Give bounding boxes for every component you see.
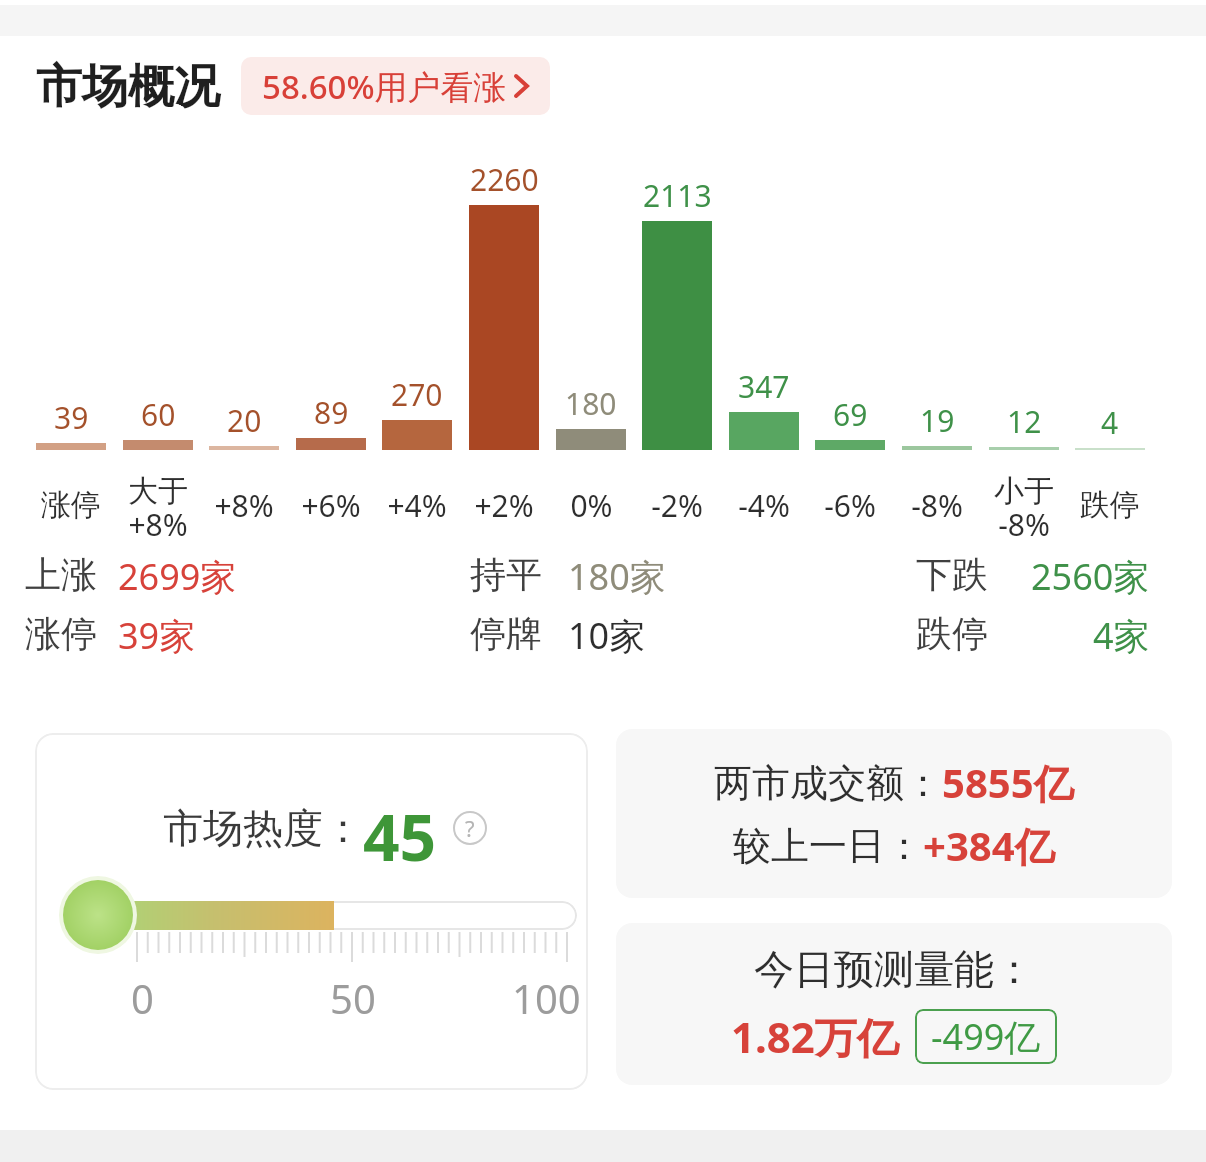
staticText: 市场热度： — [163, 803, 363, 853]
button[interactable]: 58.60%用户看涨 — [241, 57, 550, 115]
staticText: +8% — [214, 485, 274, 526]
staticText: 市场概况 — [36, 58, 220, 116]
button[interactable]: 市场热度： — [35, 733, 588, 1090]
staticText: 89 — [314, 392, 349, 430]
staticText: 100 — [512, 971, 581, 1017]
staticText: -2% — [651, 485, 703, 526]
staticText: 19 — [920, 400, 955, 438]
staticText: 2260 — [470, 159, 539, 197]
staticText: 1.82万亿 — [731, 1008, 899, 1065]
staticText: -8% — [911, 485, 963, 526]
staticText: 上涨 — [25, 552, 97, 596]
staticText: 涨停 — [25, 611, 97, 655]
staticText: 下跌 — [916, 552, 988, 596]
staticText: 69 — [833, 394, 868, 432]
staticText: +6% — [301, 485, 361, 526]
staticText: +384亿 — [923, 818, 1055, 873]
staticText: 小于 -8% — [994, 472, 1054, 538]
staticText: 50 — [330, 971, 376, 1017]
staticText: +4% — [387, 485, 447, 526]
button[interactable]: 今日预测量能： — [616, 923, 1172, 1085]
staticText: 0% — [570, 485, 613, 526]
staticText: 5855亿 — [942, 755, 1074, 810]
staticText: 10家 — [568, 611, 646, 655]
staticText: 347 — [738, 366, 790, 404]
staticText: 12 — [1007, 401, 1042, 439]
staticText: 20 — [227, 400, 262, 438]
staticText: ? — [465, 813, 475, 843]
staticText: 较上一日： — [733, 822, 923, 870]
staticText: 两市成交额： — [714, 759, 942, 807]
staticText: 跌停 — [1080, 486, 1140, 524]
staticText: 180家 — [568, 552, 666, 596]
staticText: -6% — [824, 485, 876, 526]
staticText: 4家 — [1093, 611, 1150, 655]
staticText: 39家 — [118, 611, 196, 655]
staticText: -499亿 — [931, 1012, 1041, 1061]
staticText: 180 — [565, 383, 617, 421]
staticText: 持平 — [470, 552, 542, 596]
staticText: 停牌 — [470, 611, 542, 655]
staticText: 今日预测量能： — [754, 944, 1034, 994]
staticText: 58.60%用户看涨 — [262, 64, 507, 109]
staticText: 45 — [363, 793, 437, 863]
button[interactable]: 两市成交额： — [616, 729, 1172, 898]
staticText: 2699家 — [118, 552, 237, 596]
staticText: 2113 — [643, 175, 712, 213]
staticText: 4 — [1101, 402, 1119, 440]
staticText: 0 — [131, 971, 154, 1017]
staticText: 2560家 — [1031, 552, 1150, 596]
staticText: 大于 +8% — [128, 472, 188, 538]
staticText: 涨停 — [41, 486, 101, 524]
staticText: 60 — [141, 394, 176, 432]
staticText: -4% — [738, 485, 790, 526]
staticText: +2% — [474, 485, 534, 526]
staticText: 跌停 — [916, 611, 988, 655]
staticText: 39 — [54, 397, 89, 435]
staticText: 270 — [391, 374, 443, 412]
